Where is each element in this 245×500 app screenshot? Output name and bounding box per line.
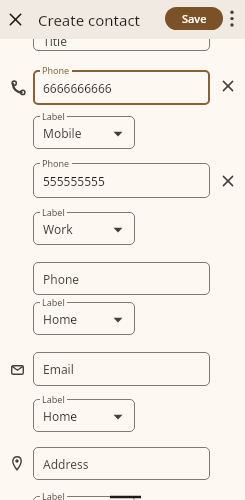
staticText: 6666666666 [43,80,112,96]
button[interactable] [219,77,237,95]
button[interactable] [33,212,135,245]
staticText: Home [43,311,78,327]
button[interactable] [33,163,210,198]
button[interactable] [6,10,25,29]
button[interactable] [33,70,210,105]
button[interactable] [33,352,210,386]
staticText: 555555555 [43,173,105,189]
staticText: Save [182,11,207,26]
staticText: Title [43,33,67,49]
staticText: Work [43,221,73,237]
button[interactable]: Save [165,7,223,30]
button[interactable] [219,172,237,190]
button[interactable] [33,399,135,432]
staticText: Label [42,490,65,500]
button[interactable] [33,447,210,480]
staticText: Label [42,110,65,122]
staticText: Email [43,361,74,377]
staticText: Label [42,296,65,308]
staticText: Phone [42,64,70,76]
button[interactable] [226,8,238,31]
button[interactable] [33,116,135,149]
staticText: Phone [42,157,70,169]
button[interactable] [33,17,210,51]
button[interactable] [33,302,135,335]
staticText: Label [42,393,65,405]
button[interactable] [33,262,210,295]
staticText: Address [43,456,89,472]
staticText: Mobile [43,125,82,141]
staticText: Label [42,206,65,218]
staticText: Create contact [38,10,141,30]
staticText: Home [43,408,78,424]
staticText: Phone [43,271,80,287]
button[interactable] [33,496,135,500]
